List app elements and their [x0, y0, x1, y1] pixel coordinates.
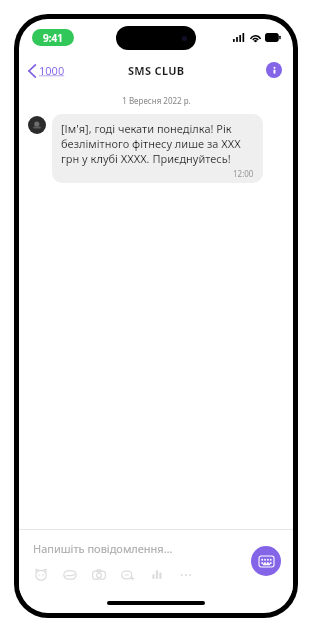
staticText: Напишіть повідомлення…	[33, 541, 173, 556]
button[interactable]: Напишіть повідомлення…	[33, 539, 243, 558]
staticText: [Ім'я], годі чекати понеділка! Рік безлі…	[61, 121, 254, 166]
staticText: 9:41	[43, 31, 63, 45]
button[interactable]: Animoji	[33, 567, 49, 583]
button[interactable]: Keyboard	[251, 546, 281, 576]
button[interactable]: 1000	[19, 59, 73, 82]
button[interactable]: Contact avatar	[28, 116, 46, 134]
staticText: 1 Вересня 2022 р.	[122, 95, 191, 106]
button[interactable]: Photos	[62, 567, 78, 583]
staticText: 1000	[39, 63, 65, 78]
button[interactable]: More	[178, 567, 194, 583]
button[interactable]: Camera	[91, 567, 107, 583]
button[interactable]: GIF	[120, 567, 136, 583]
button[interactable]: Audio	[149, 567, 165, 583]
button[interactable]: [Ім'я], годі чекати понеділка! Рік безлі…	[52, 114, 263, 183]
staticText: 12:00	[233, 168, 254, 179]
staticText: SMS CLUB	[128, 63, 185, 78]
button[interactable]: Info	[266, 62, 282, 78]
